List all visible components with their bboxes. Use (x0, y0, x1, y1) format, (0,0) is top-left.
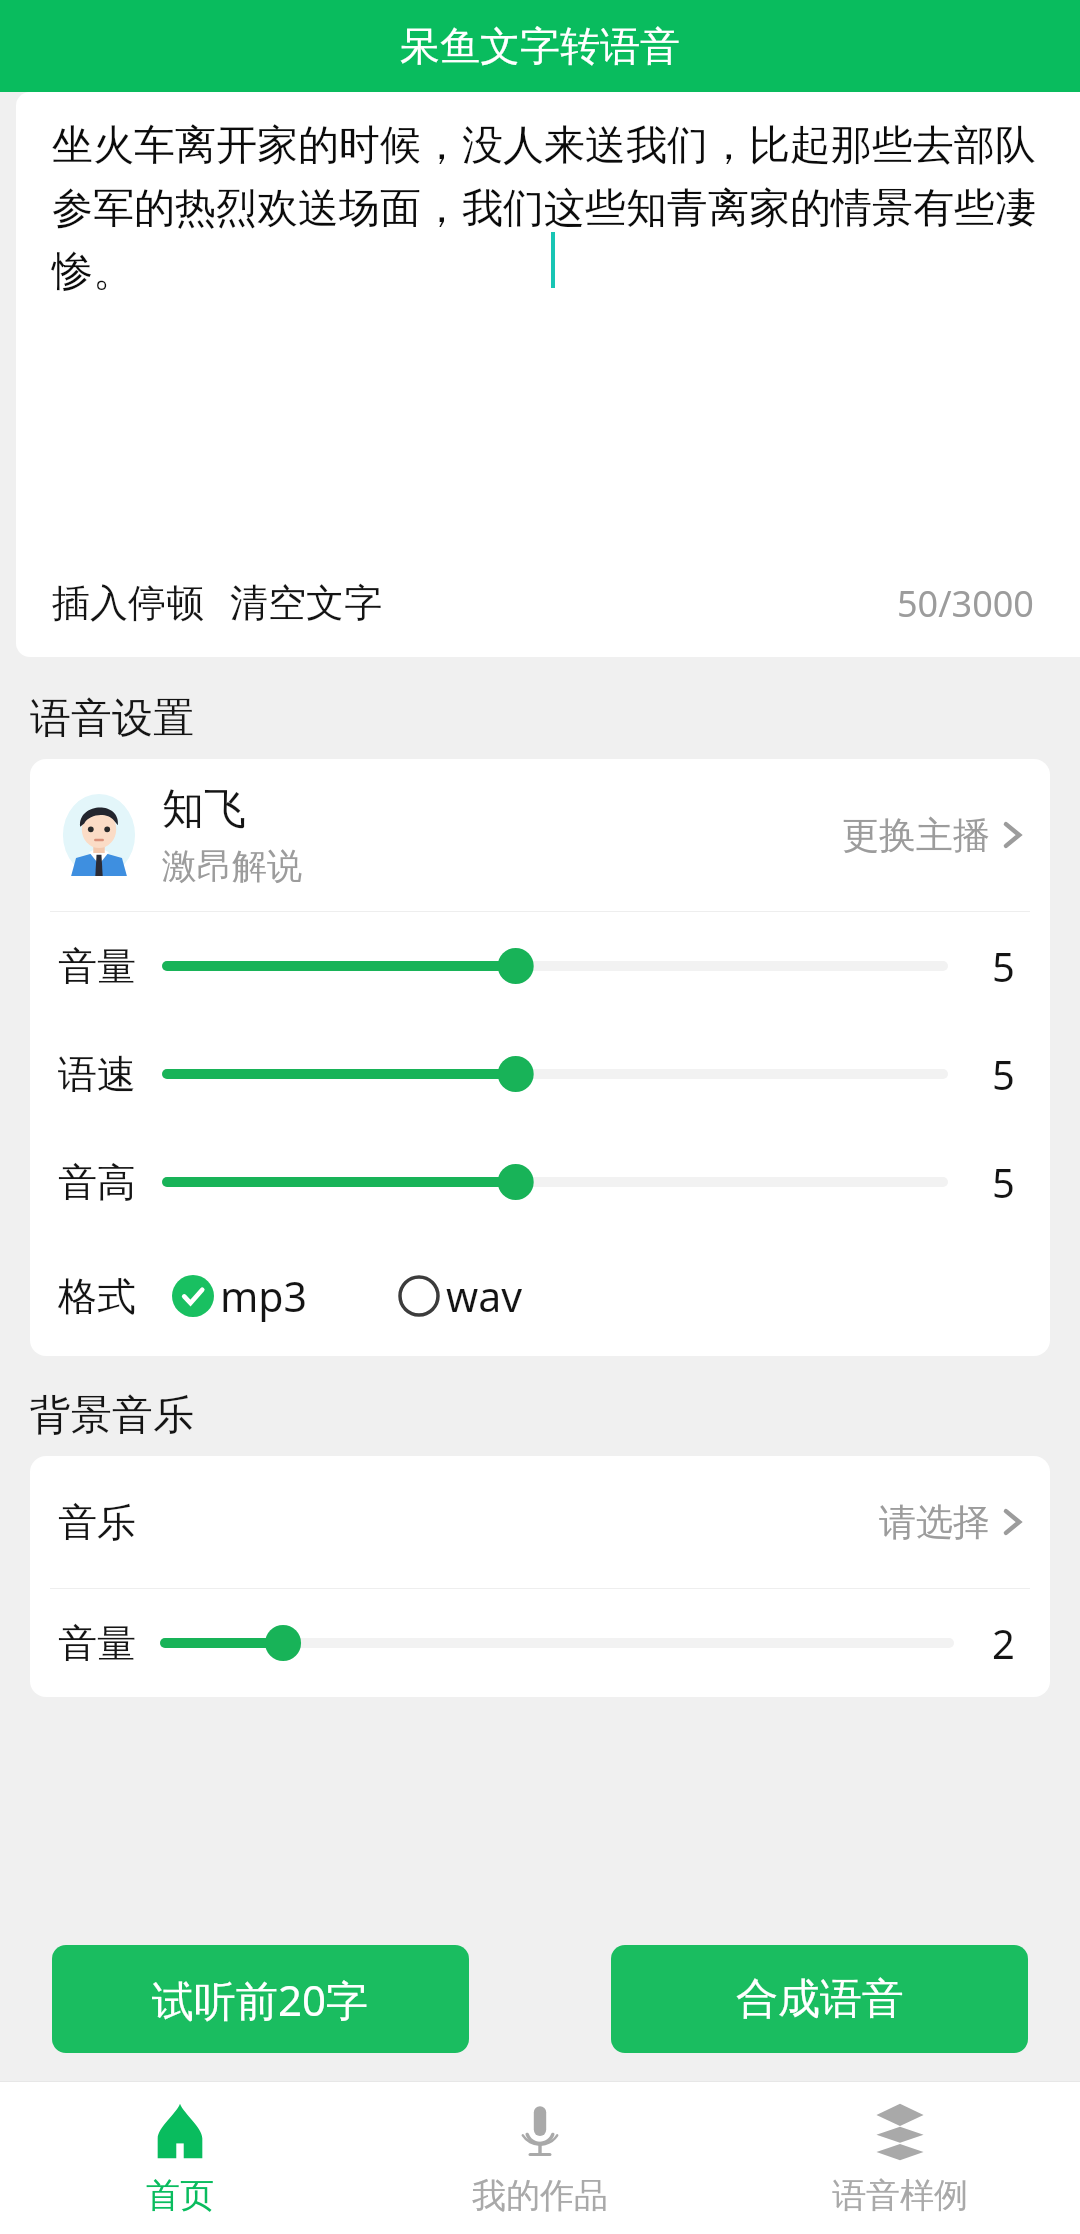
button[interactable]: 试听前20字 (52, 1945, 469, 2053)
staticText: 背景音乐 (30, 1390, 194, 1442)
staticText: 激昂解说 (162, 844, 302, 888)
staticText: 清空文字 (230, 579, 382, 627)
staticText: 知飞 (162, 783, 246, 836)
button[interactable]: 清空文字 (230, 571, 382, 635)
button[interactable]: mp3 (166, 1262, 314, 1330)
button[interactable]: 语音样例 (720, 2082, 1080, 2234)
other: 我的作品 (509, 2100, 571, 2162)
staticText: 语音设置 (30, 693, 194, 745)
other: 首页 (149, 2100, 211, 2162)
button[interactable] (162, 936, 948, 996)
button[interactable]: 知飞 (30, 759, 1050, 911)
staticText: 格式 (58, 1272, 136, 1321)
button[interactable]: 合成语音 (611, 1945, 1028, 2053)
button[interactable]: 首页 (0, 2082, 360, 2234)
staticText: 5 (992, 939, 1015, 993)
button[interactable]: 我的作品 (360, 2082, 720, 2234)
staticText: 呆鱼文字转语音 (400, 21, 680, 71)
staticText: 2 (992, 1616, 1015, 1670)
staticText: 50/3000 (897, 579, 1034, 628)
staticText: 5 (992, 1047, 1015, 1101)
staticText: 坐火车离开家的时候，没人来送我们，比起那些去部队参军的热烈欢送场面，我们这些知青… (52, 120, 1036, 297)
staticText: 5 (992, 1155, 1015, 1209)
staticText: 合成语音 (736, 1973, 904, 2026)
staticText: 更换主播 (842, 812, 990, 859)
staticText: 试听前20字 (152, 1971, 369, 2028)
staticText: 我的作品 (472, 2174, 608, 2217)
button[interactable]: 插入停顿 (52, 571, 204, 635)
button[interactable] (160, 1613, 954, 1673)
staticText: 首页 (146, 2174, 214, 2217)
staticText: 请选择 (879, 1499, 990, 1546)
button[interactable]: 音乐 (30, 1456, 1050, 1588)
staticText: 语速 (58, 1050, 136, 1099)
staticText: mp3 (220, 1268, 308, 1324)
button[interactable]: wav (392, 1262, 529, 1330)
staticText: 语音样例 (832, 2174, 968, 2217)
button[interactable]: 坐火车离开家的时候，没人来送我们，比起那些去部队参军的热烈欢送场面，我们这些知青… (16, 92, 1080, 657)
other: 语音样例 (869, 2100, 931, 2162)
staticText: 插入停顿 (52, 579, 204, 627)
staticText: 音量 (58, 1619, 136, 1668)
button[interactable] (162, 1044, 948, 1104)
staticText: wav (446, 1268, 523, 1324)
staticText: 音乐 (58, 1498, 136, 1547)
staticText: 音量 (58, 942, 136, 991)
staticText: 音高 (58, 1158, 136, 1207)
button[interactable] (162, 1152, 948, 1212)
